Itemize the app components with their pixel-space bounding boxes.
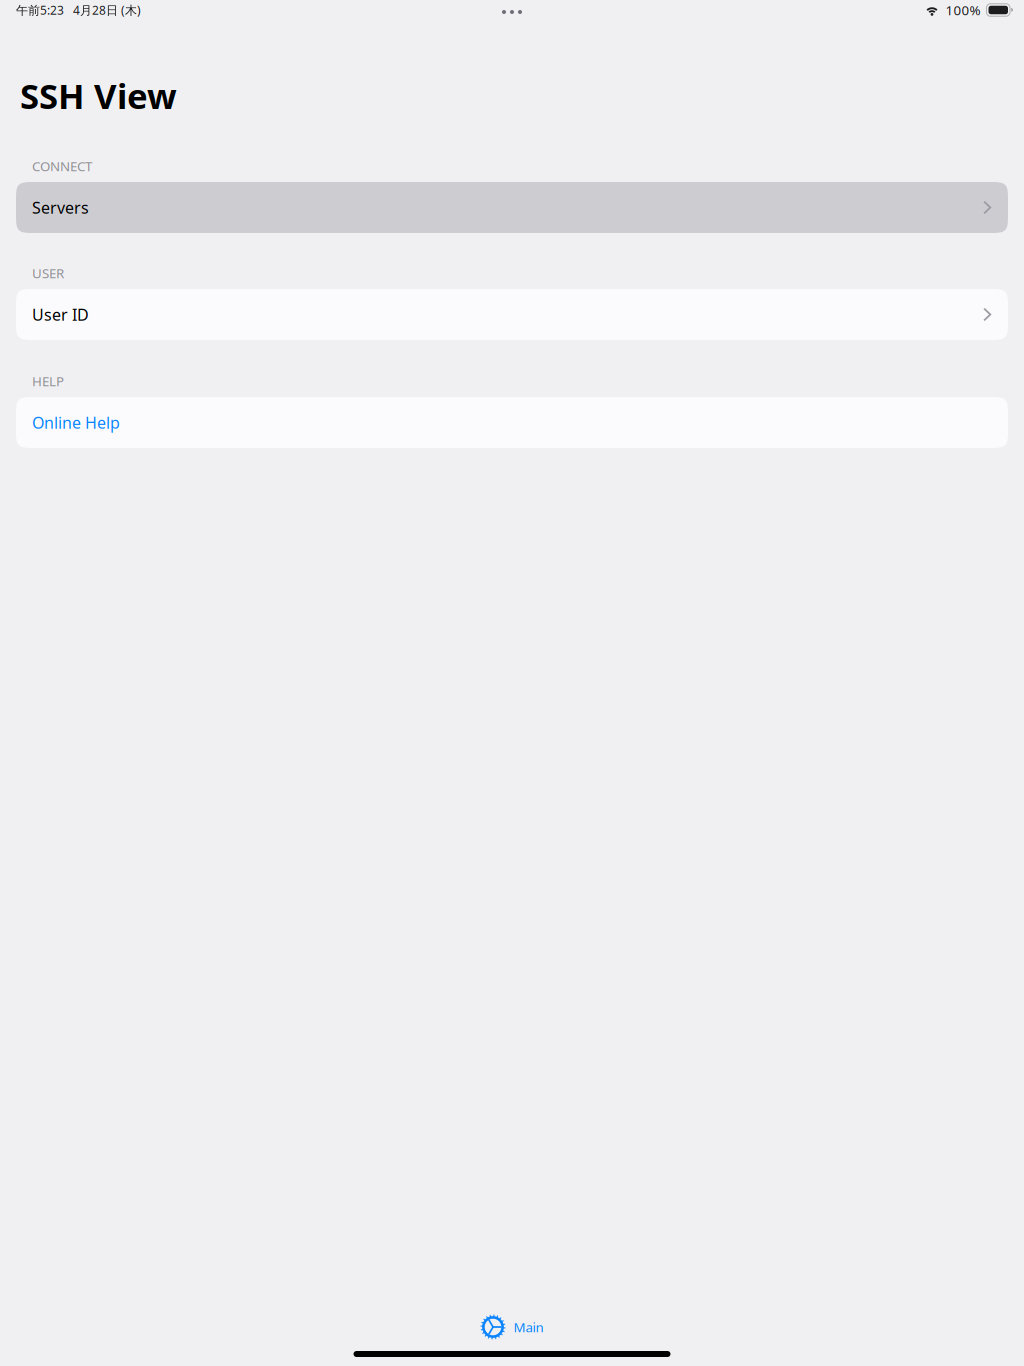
staticText: 100% xyxy=(945,1,980,19)
button[interactable]: Servers xyxy=(16,182,1008,233)
staticText: 午前5:23 4月28日 (木) xyxy=(16,2,141,18)
staticText: CONNECT xyxy=(32,157,92,175)
staticText: HELP xyxy=(32,372,64,390)
staticText: SSH View xyxy=(20,72,177,118)
staticText: USER xyxy=(32,264,64,282)
staticText: Online Help xyxy=(32,412,120,433)
button[interactable]: User ID xyxy=(16,289,1008,340)
staticText: Servers xyxy=(32,197,89,218)
button[interactable]: Main xyxy=(464,1305,559,1349)
staticText: Main xyxy=(513,1318,543,1336)
button[interactable]: Online Help xyxy=(16,397,1008,448)
staticText: User ID xyxy=(32,304,89,325)
